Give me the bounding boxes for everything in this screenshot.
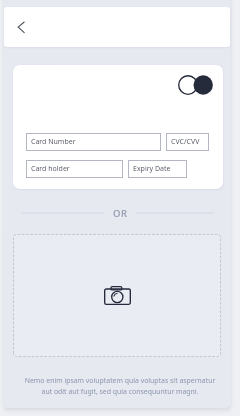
button[interactable]: Expiry Date <box>128 160 187 178</box>
staticText: OR <box>113 207 128 220</box>
staticText: Expiry Date <box>133 164 171 174</box>
button[interactable]: Back <box>8 14 34 40</box>
staticText: Card holder <box>31 164 70 174</box>
staticText: Nemo enim ipsam voluptatem quia voluptas… <box>21 376 219 396</box>
staticText: Card Number <box>31 137 76 147</box>
button[interactable]: CVC/CVV <box>166 133 209 151</box>
staticText: CVC/CVV <box>171 137 200 147</box>
button[interactable]: Card Number <box>26 133 161 151</box>
button[interactable]: Card holder <box>26 160 123 178</box>
button[interactable]: Scan card with camera <box>13 234 221 357</box>
